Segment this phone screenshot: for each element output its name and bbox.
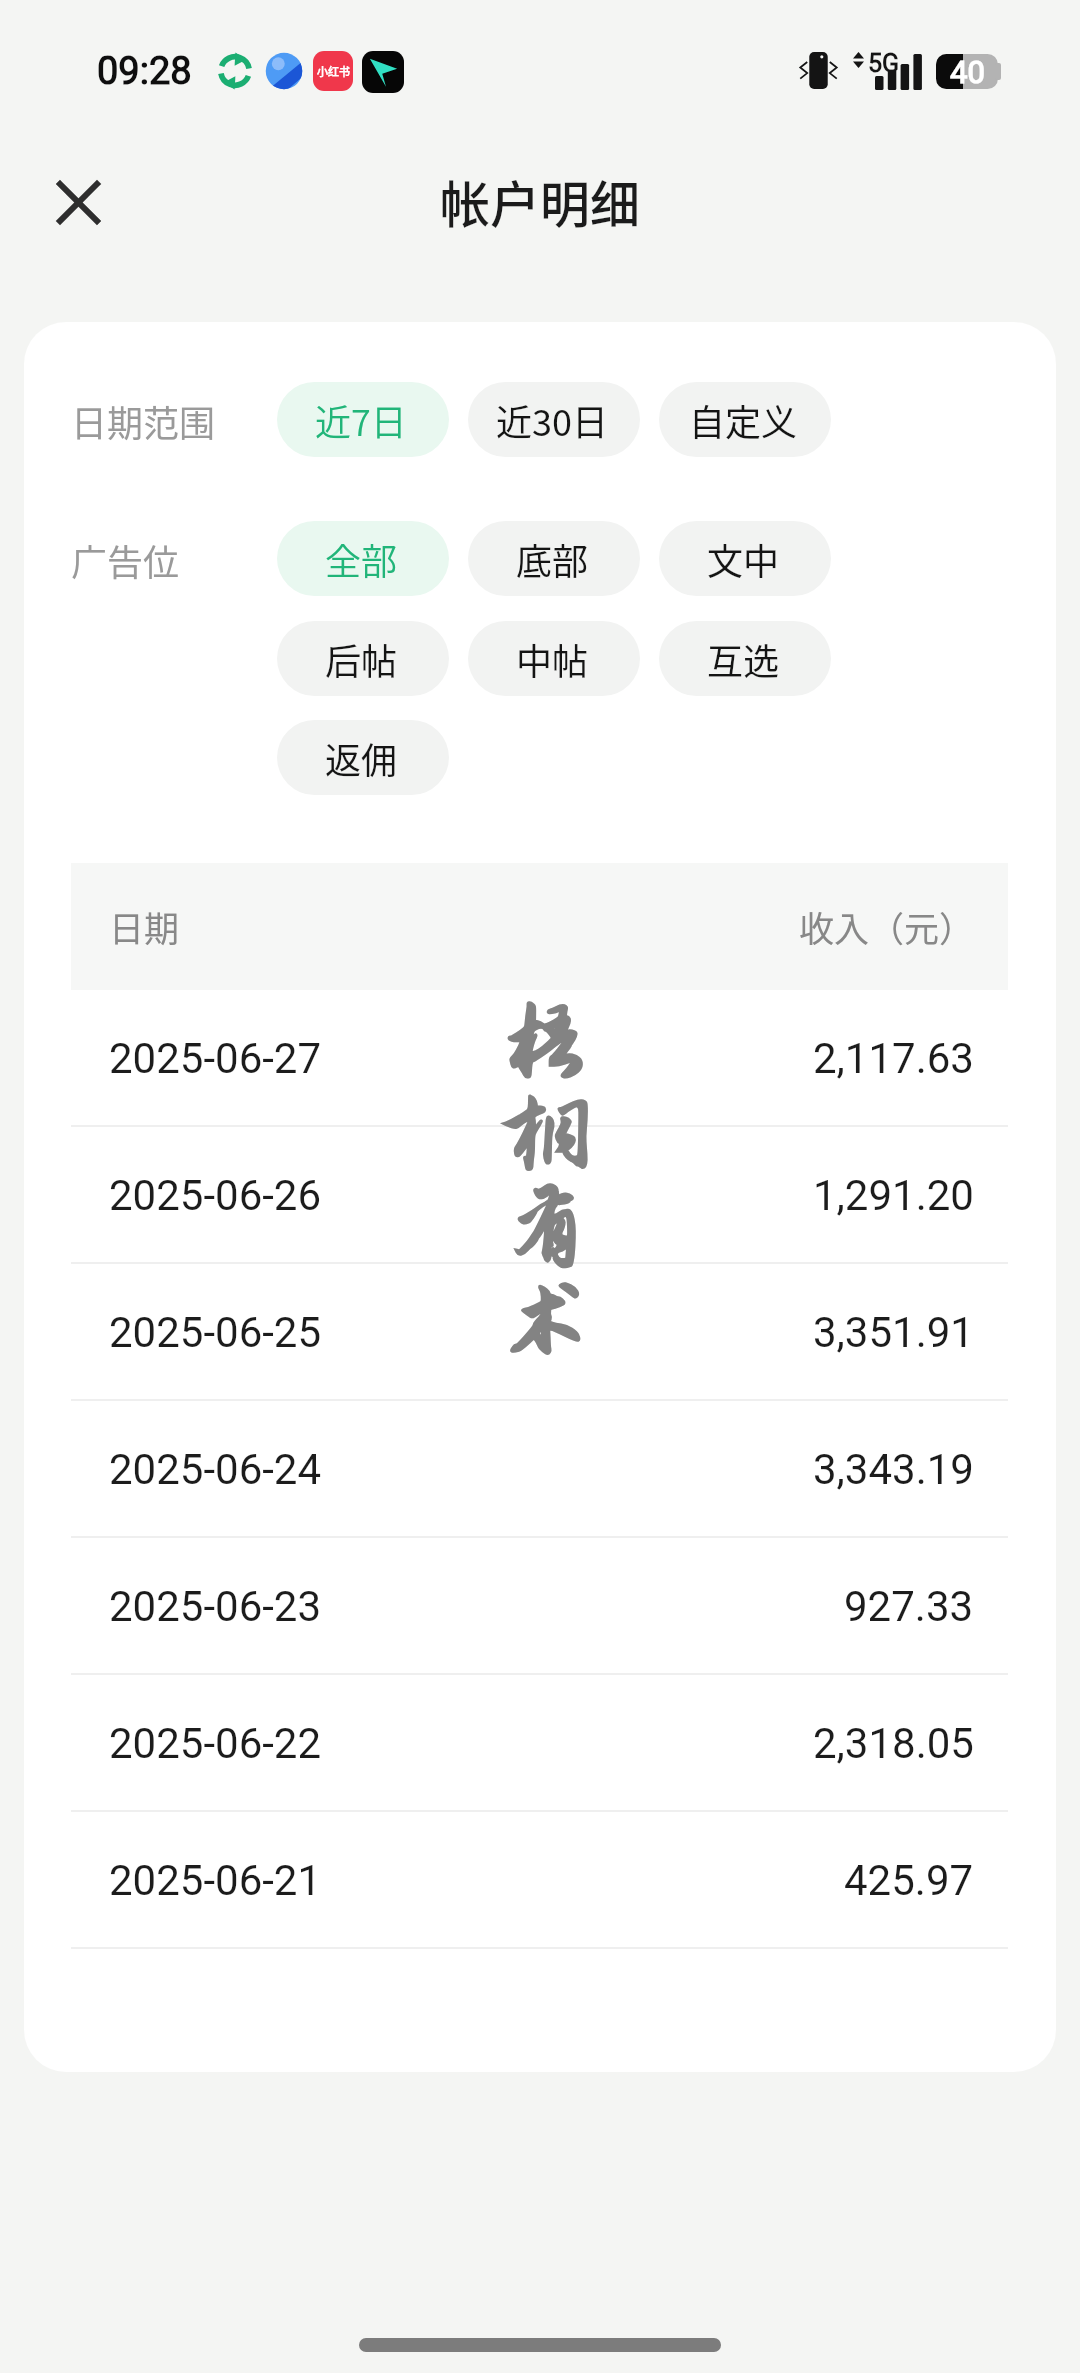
staticText: 梧 [502,994,589,1090]
staticText: 返佣 [325,732,398,784]
staticText: 2025-06-26 [109,1171,322,1220]
staticText: 日期 [109,901,180,952]
staticText: 互选 [707,633,780,685]
staticText: 425.97 [844,1856,974,1905]
button[interactable]: 2025-06-27 [71,990,1008,1127]
button[interactable]: 底部 [468,521,640,596]
button[interactable]: 2025-06-21 [71,1812,1008,1949]
staticText: 术 [502,1273,589,1369]
staticText: 2,117.63 [813,1034,974,1083]
button[interactable]: 2025-06-23 [71,1538,1008,1675]
staticText: 日期范围 [71,395,216,447]
button[interactable]: 近7日 [277,382,449,457]
staticText: 近30日 [496,394,608,446]
staticText: 自定义 [689,394,798,446]
staticText: 3,343.19 [813,1445,974,1494]
staticText: 2,318.05 [813,1719,974,1768]
staticText: 帐户明细 [440,165,640,237]
button[interactable]: 2025-06-24 [71,1401,1008,1538]
staticText: 927.33 [844,1582,974,1631]
staticText: 2025-06-22 [109,1719,322,1768]
staticText: 09:28 [97,49,192,94]
staticText: 小红书 [317,63,350,79]
staticText: 全部 [325,533,398,585]
button[interactable]: 2025-06-25 [71,1264,1008,1401]
staticText: 底部 [516,533,589,585]
button[interactable]: 文中 [659,521,831,596]
staticText: 2025-06-23 [109,1582,322,1631]
staticText: 桐 [502,1087,589,1183]
staticText: 文中 [707,533,780,585]
staticText: 广告位 [71,534,180,586]
button[interactable]: 2025-06-22 [71,1675,1008,1812]
staticText: 收入（元） [799,901,975,952]
staticText: 1,291.20 [813,1171,974,1220]
button[interactable]: 后帖 [277,621,449,696]
staticText: 2025-06-21 [109,1856,322,1905]
staticText: 有 [502,1180,589,1276]
button[interactable]: 近30日 [468,382,640,457]
button[interactable]: 返佣 [277,720,449,795]
button[interactable]: 自定义 [659,382,831,457]
staticText: 近7日 [315,394,407,446]
button[interactable]: 互选 [659,621,831,696]
staticText: 2025-06-25 [109,1308,322,1357]
staticText: 40 [950,54,985,89]
button[interactable]: Close [18,142,138,262]
staticText: 中帖 [516,633,589,685]
button[interactable]: 中帖 [468,621,640,696]
staticText: 5G [868,49,900,78]
staticText: 3,351.91 [813,1308,974,1357]
button[interactable]: 全部 [277,521,449,596]
staticText: 2025-06-24 [109,1445,322,1494]
staticText: 2025-06-27 [109,1034,322,1083]
button[interactable]: 2025-06-26 [71,1127,1008,1264]
staticText: 后帖 [325,633,398,685]
